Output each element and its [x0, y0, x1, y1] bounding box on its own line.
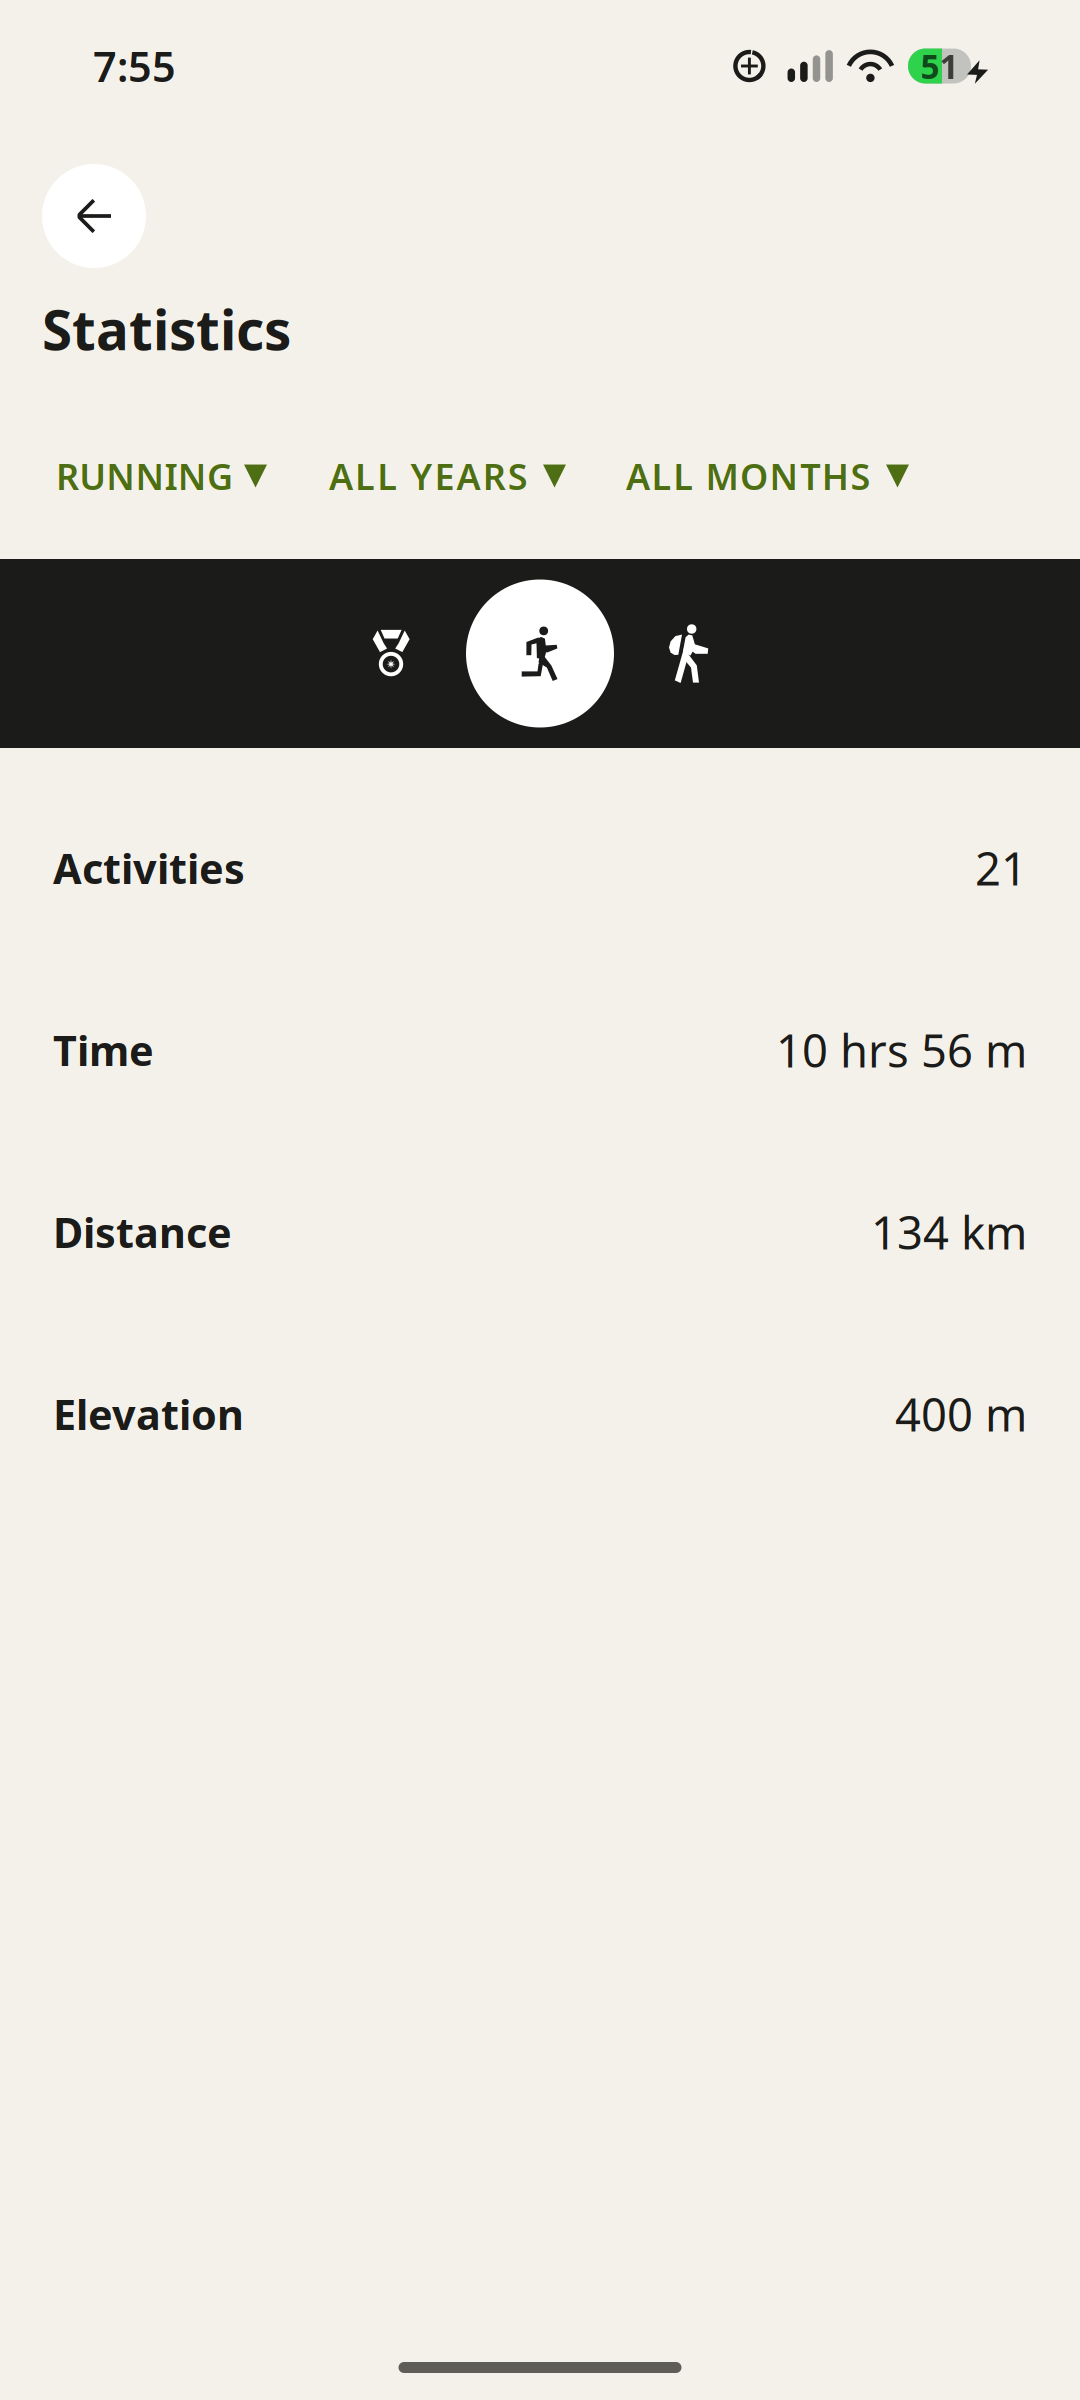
staticText: 21 [975, 838, 1027, 898]
staticText: Distance [53, 1205, 232, 1259]
button[interactable]: RUNNING [56, 454, 267, 498]
button[interactable]: ALL YEARS [329, 454, 566, 498]
staticText: 134 km [871, 1202, 1027, 1262]
button[interactable]: Hiking [614, 559, 763, 748]
button[interactable]: ALL MONTHS [626, 454, 909, 498]
staticText: RUNNING [56, 452, 233, 500]
button[interactable]: Achievements [316, 559, 465, 748]
staticText: ALL MONTHS [626, 452, 870, 500]
staticText: 400 m [895, 1384, 1027, 1444]
staticText: Elevation [53, 1387, 244, 1441]
button[interactable]: Back [42, 164, 146, 268]
staticText: Statistics [42, 293, 291, 365]
staticText: 1 [939, 44, 958, 88]
staticText: 5 [920, 44, 939, 88]
staticText: Activities [53, 841, 245, 895]
staticText: 7:55 [93, 39, 176, 93]
button[interactable]: Running [465, 559, 614, 748]
staticText: Time [53, 1023, 154, 1077]
staticText: ALL YEARS [329, 452, 528, 500]
staticText: 10 hrs 56 m [776, 1020, 1027, 1080]
